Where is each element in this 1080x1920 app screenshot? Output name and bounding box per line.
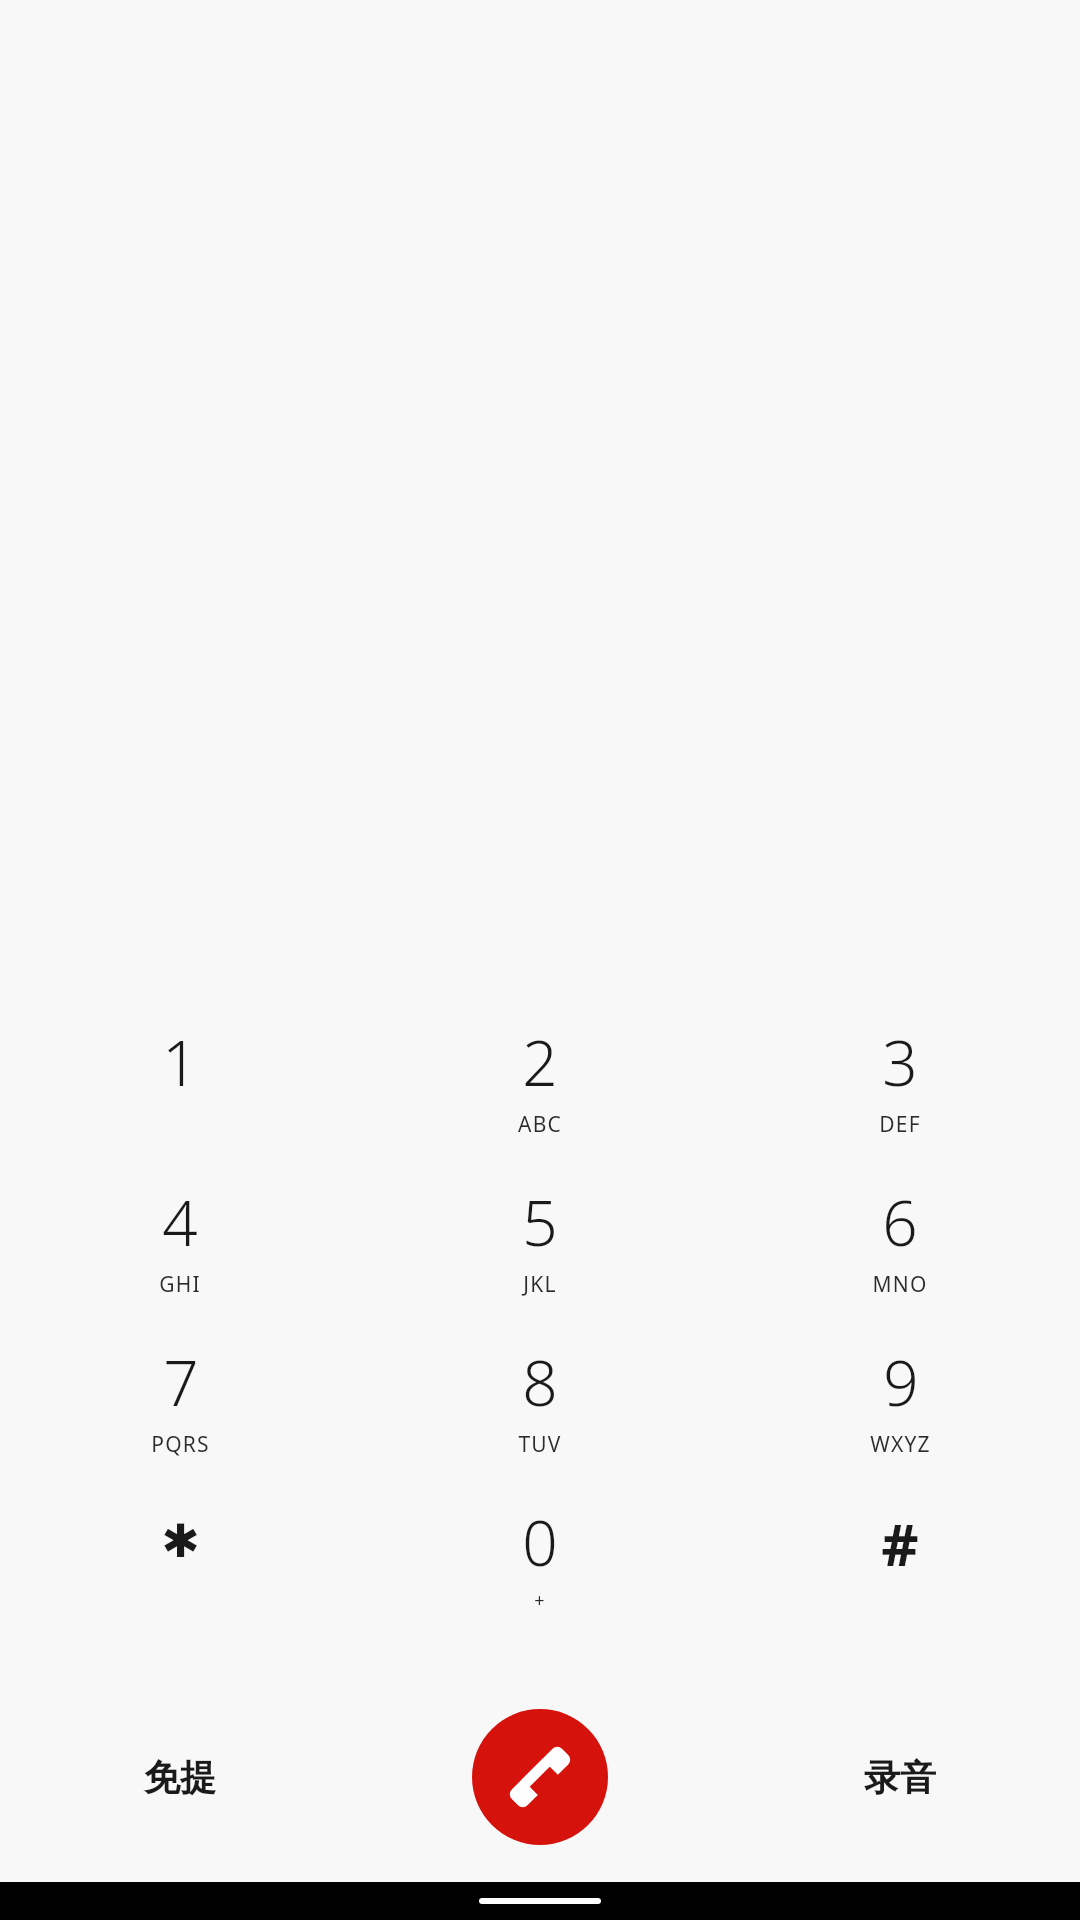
staticText: 录音 <box>864 1755 936 1800</box>
button[interactable]: 4 <box>0 1180 360 1340</box>
staticText: GHI <box>159 1270 201 1299</box>
button[interactable]: 3 <box>720 1020 1080 1180</box>
staticText: ✱ <box>161 1514 200 1568</box>
button[interactable]: 免提 <box>0 1682 360 1872</box>
staticText: 5 <box>522 1180 558 1264</box>
button[interactable]: 0 <box>360 1500 720 1660</box>
staticText: JKL <box>523 1270 557 1299</box>
staticText: ABC <box>518 1110 562 1139</box>
button[interactable]: 1 <box>0 1020 360 1180</box>
staticText: 7 <box>163 1340 199 1424</box>
staticText: 9 <box>883 1340 919 1424</box>
staticText: 1 <box>162 1020 198 1104</box>
staticText: # <box>881 1504 919 1583</box>
staticText: 免提 <box>144 1755 216 1800</box>
staticText: PQRS <box>151 1430 210 1459</box>
staticText: 0 <box>522 1500 558 1584</box>
staticText: TUV <box>518 1430 562 1459</box>
button[interactable]: 8 <box>360 1340 720 1500</box>
staticText: + <box>534 1588 546 1613</box>
staticText: MNO <box>872 1270 928 1299</box>
button[interactable]: 9 <box>720 1340 1080 1500</box>
staticText: 2 <box>522 1020 558 1104</box>
button[interactable]: 7 <box>0 1340 360 1500</box>
staticText: 3 <box>882 1020 918 1104</box>
button[interactable]: 录音 <box>720 1682 1080 1872</box>
staticText: DEF <box>879 1110 921 1139</box>
button[interactable]: 5 <box>360 1180 720 1340</box>
staticText: 8 <box>522 1340 558 1424</box>
staticText: 6 <box>882 1180 918 1264</box>
staticText: 4 <box>162 1180 198 1264</box>
button[interactable]: 2 <box>360 1020 720 1180</box>
button[interactable]: 6 <box>720 1180 1080 1340</box>
button[interactable]: ✱ <box>0 1514 360 1674</box>
button[interactable]: # <box>720 1504 1080 1664</box>
staticText: WXYZ <box>870 1430 931 1459</box>
button[interactable]: End call <box>472 1709 608 1845</box>
